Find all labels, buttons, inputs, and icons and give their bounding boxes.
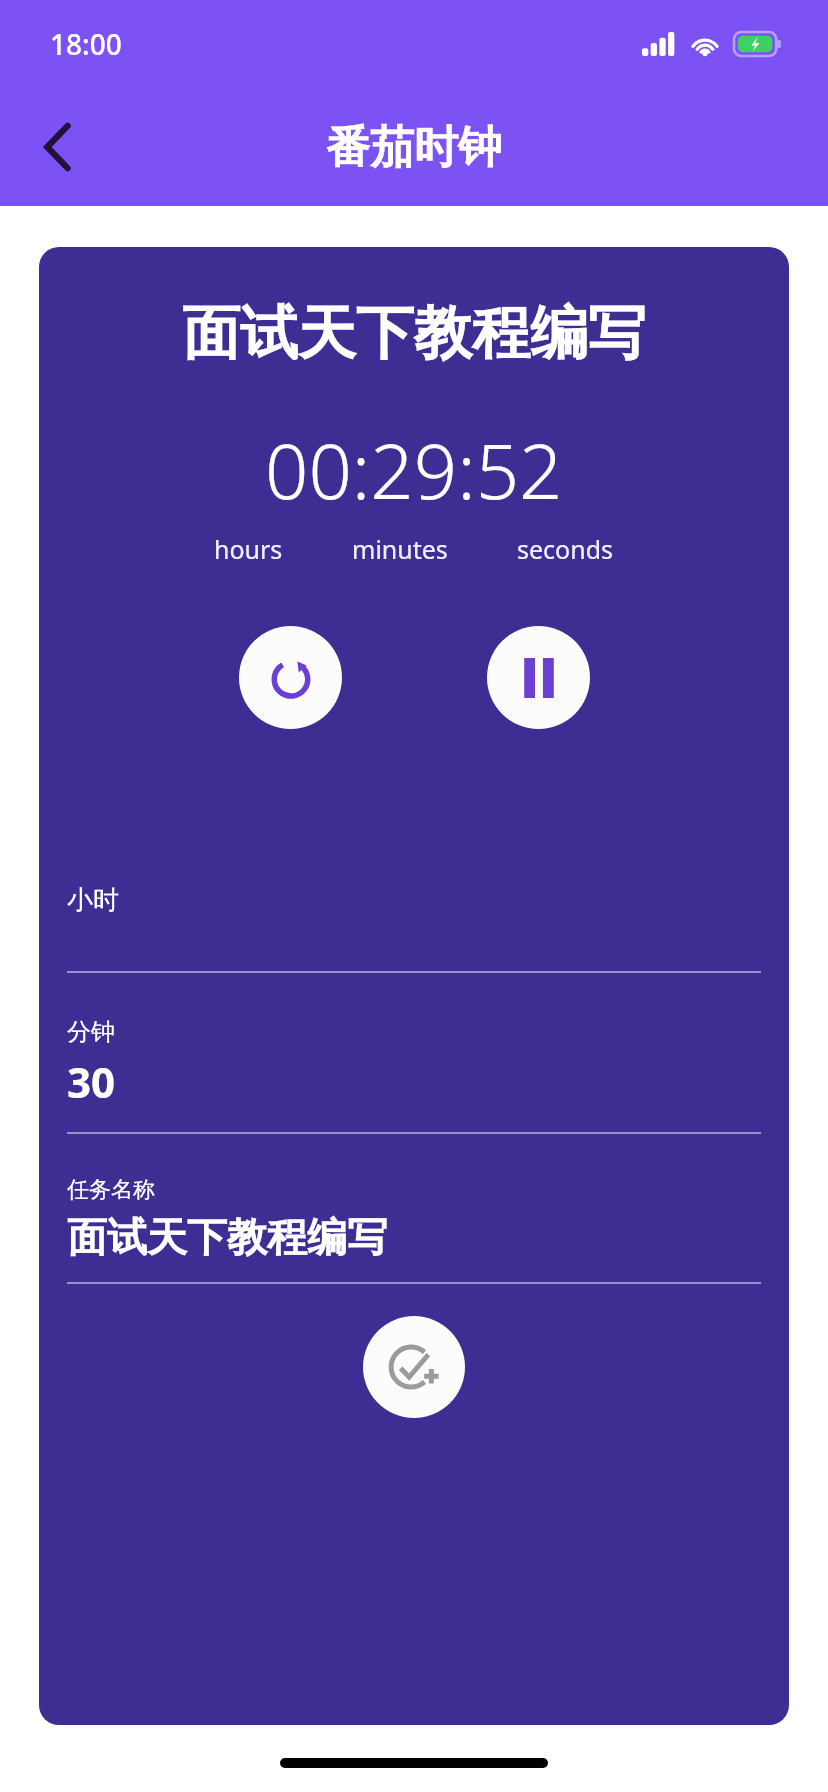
staticText: 30 xyxy=(67,1053,116,1110)
staticText: 任务名称 xyxy=(67,1176,155,1204)
staticText: hours xyxy=(214,532,283,566)
staticText: 分钟 xyxy=(67,1017,115,1047)
button[interactable]: Restart xyxy=(239,626,342,729)
staticText: seconds xyxy=(517,532,614,566)
button[interactable]: Add task xyxy=(363,1316,465,1418)
staticText: 00:29:52 xyxy=(265,418,563,522)
staticText: 小时 xyxy=(67,884,119,917)
button[interactable]: Pause xyxy=(487,626,590,729)
button[interactable]: Back xyxy=(22,111,94,183)
staticText: 18:00 xyxy=(50,25,122,63)
staticText: 面试天下教程编写 xyxy=(67,1212,387,1262)
staticText: minutes xyxy=(352,532,448,566)
staticText: 番茄时钟 xyxy=(326,120,502,175)
staticText: 面试天下教程编写 xyxy=(182,297,646,370)
